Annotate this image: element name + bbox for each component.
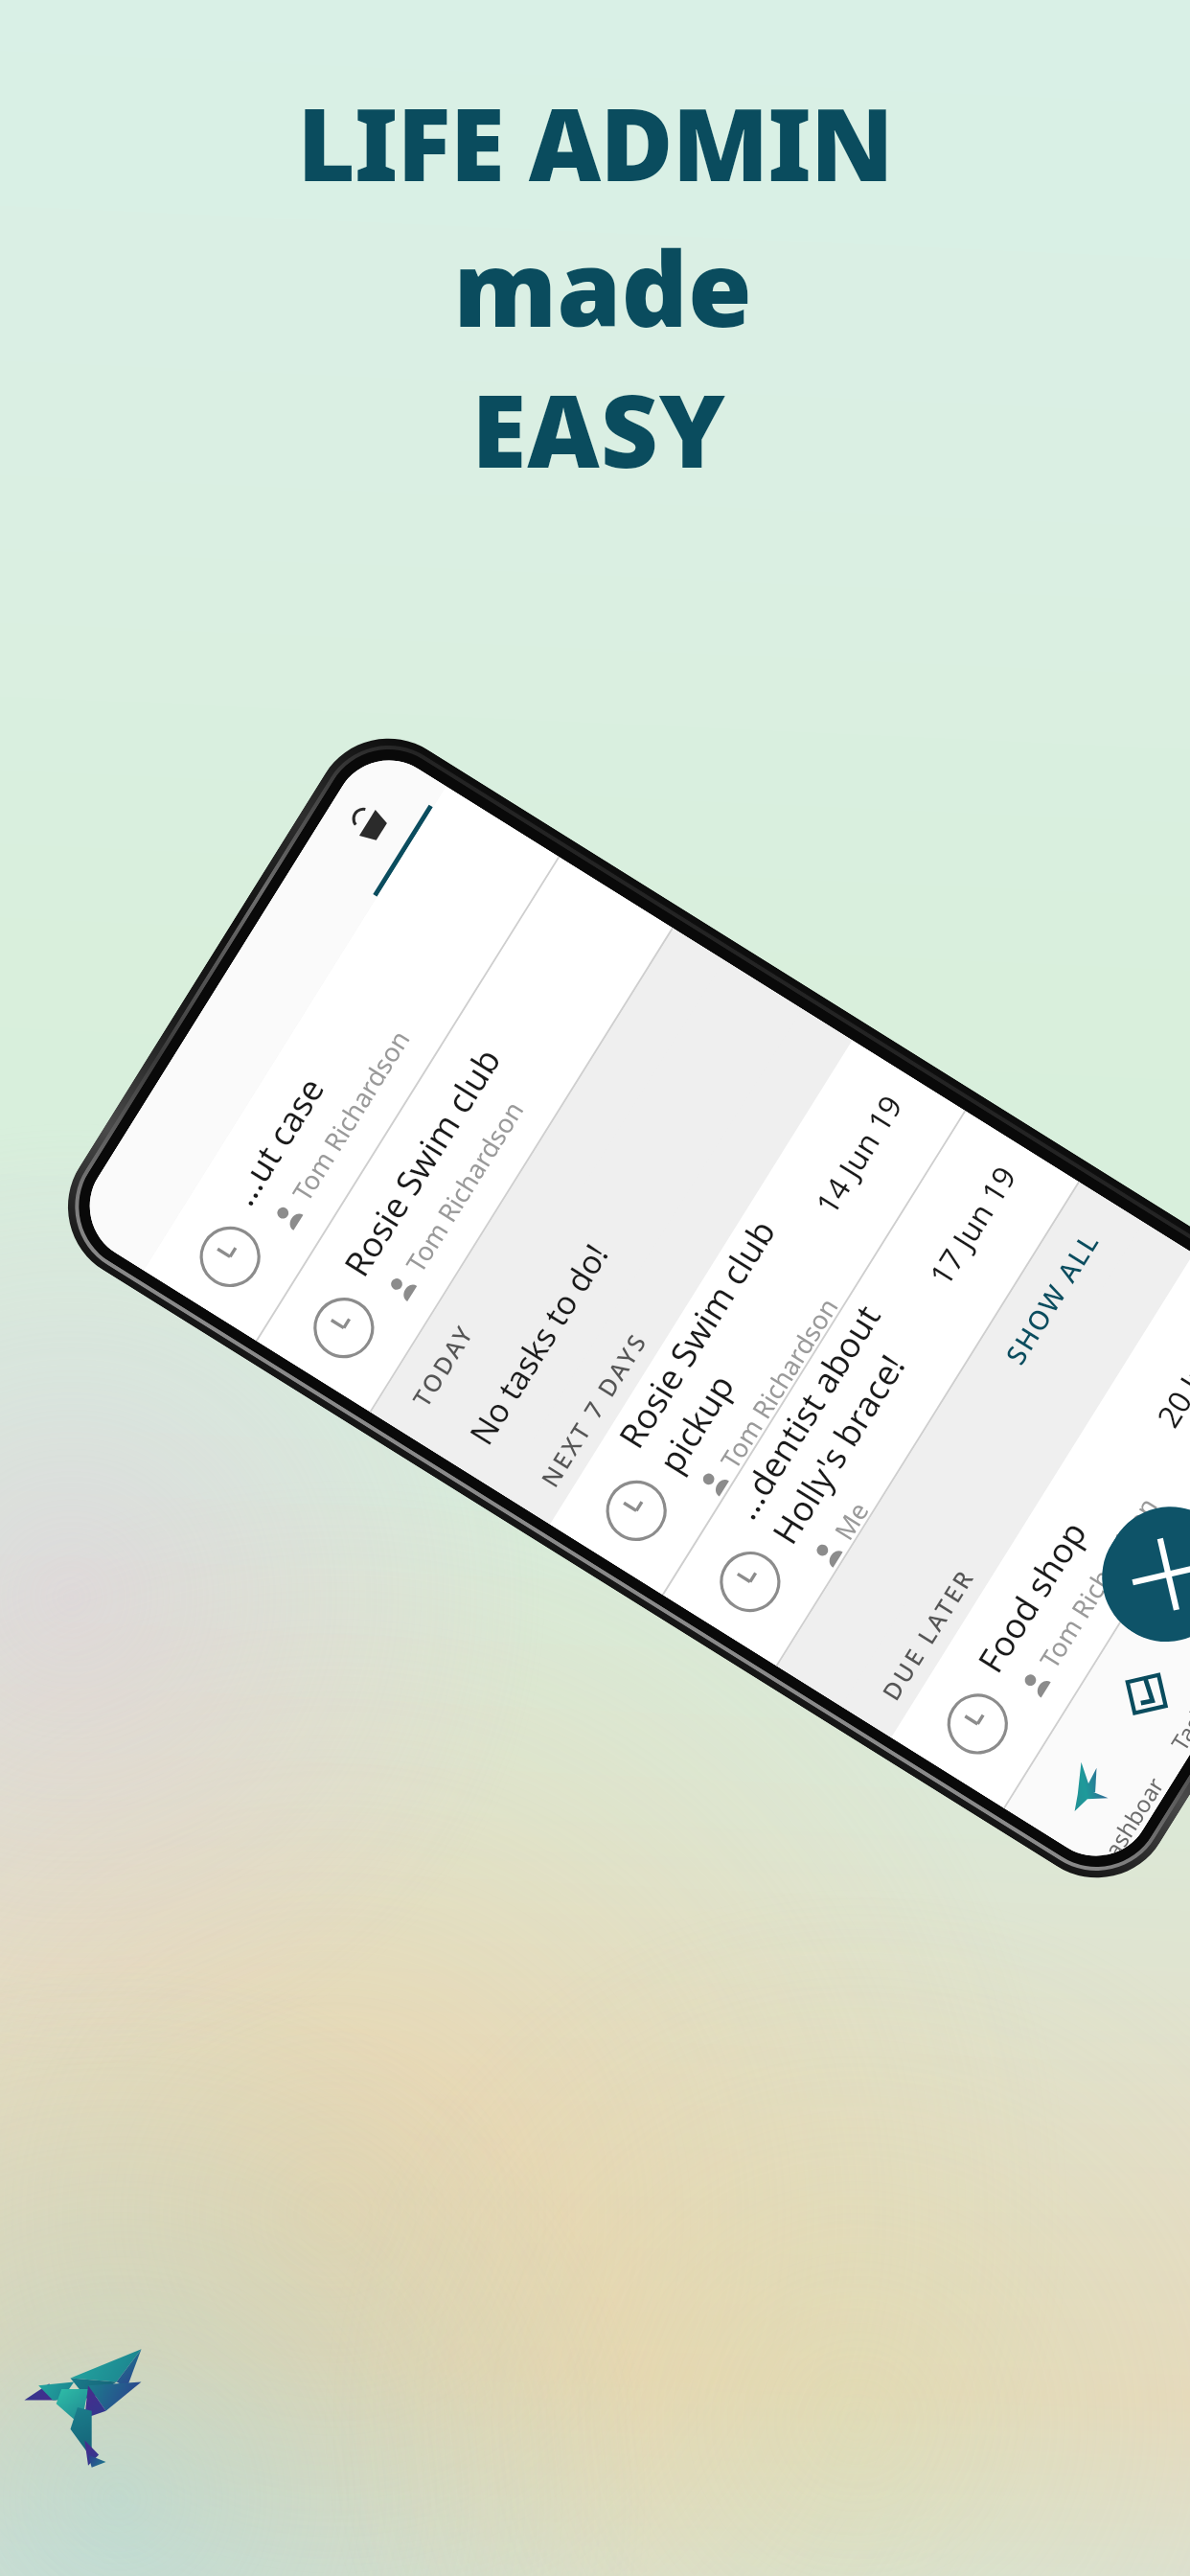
staticText: …dentist about Holly's brace! <box>721 1247 961 1553</box>
staticText: made <box>453 217 752 357</box>
button[interactable]: Rosie Swim club pickup <box>550 1040 965 1595</box>
button[interactable] <box>69 739 446 1270</box>
button[interactable]: Dashboard <box>1005 1711 1175 1877</box>
staticText: TODAY <box>405 1317 481 1412</box>
staticText: Tasks <box>1163 1690 1190 1756</box>
staticText: 20 Jun 19 <box>1147 1300 1190 1435</box>
staticText: Dashboard <box>1088 1763 1175 1877</box>
button[interactable]: Food shop <box>891 1253 1190 1808</box>
staticText: Tom Richardson <box>712 1291 842 1473</box>
staticText: No tasks to do! <box>459 1235 618 1453</box>
button[interactable]: Rosie Swim club <box>257 857 672 1412</box>
staticText: Me <box>826 1495 872 1544</box>
button[interactable]: …ut case <box>144 786 558 1341</box>
staticText: SHOW ALL <box>997 1225 1107 1371</box>
staticText: LIFE ADMIN <box>297 75 893 211</box>
button[interactable]: Close add menu <box>1078 1483 1190 1666</box>
staticText: 14 Jun 19 <box>806 1087 912 1222</box>
staticText: Tom Richardson <box>284 1023 418 1207</box>
button[interactable]: SHOW ALL <box>777 1182 1143 1706</box>
button[interactable]: Documents <box>1187 1421 1190 1586</box>
button[interactable]: Tasks <box>1066 1615 1190 1779</box>
button[interactable]: …dentist about Holly's brace! <box>664 1111 1078 1666</box>
staticText: Rosie Swim club pickup <box>608 1176 847 1482</box>
staticText: …ut case <box>219 1068 335 1214</box>
staticText: Rosie Swim club <box>333 1039 511 1285</box>
staticText: Tom Richardson <box>1031 1490 1165 1675</box>
other: Hummingbird logo <box>17 2298 195 2480</box>
staticText: Tom Richardson <box>398 1094 531 1279</box>
staticText: EASY <box>471 361 726 497</box>
staticText: DUE LATER <box>874 1562 981 1706</box>
staticText: NEXT 7 DAYS <box>533 1326 654 1493</box>
staticText: Food shop <box>967 1512 1097 1681</box>
staticText: 17 Jun 19 <box>920 1158 1026 1293</box>
